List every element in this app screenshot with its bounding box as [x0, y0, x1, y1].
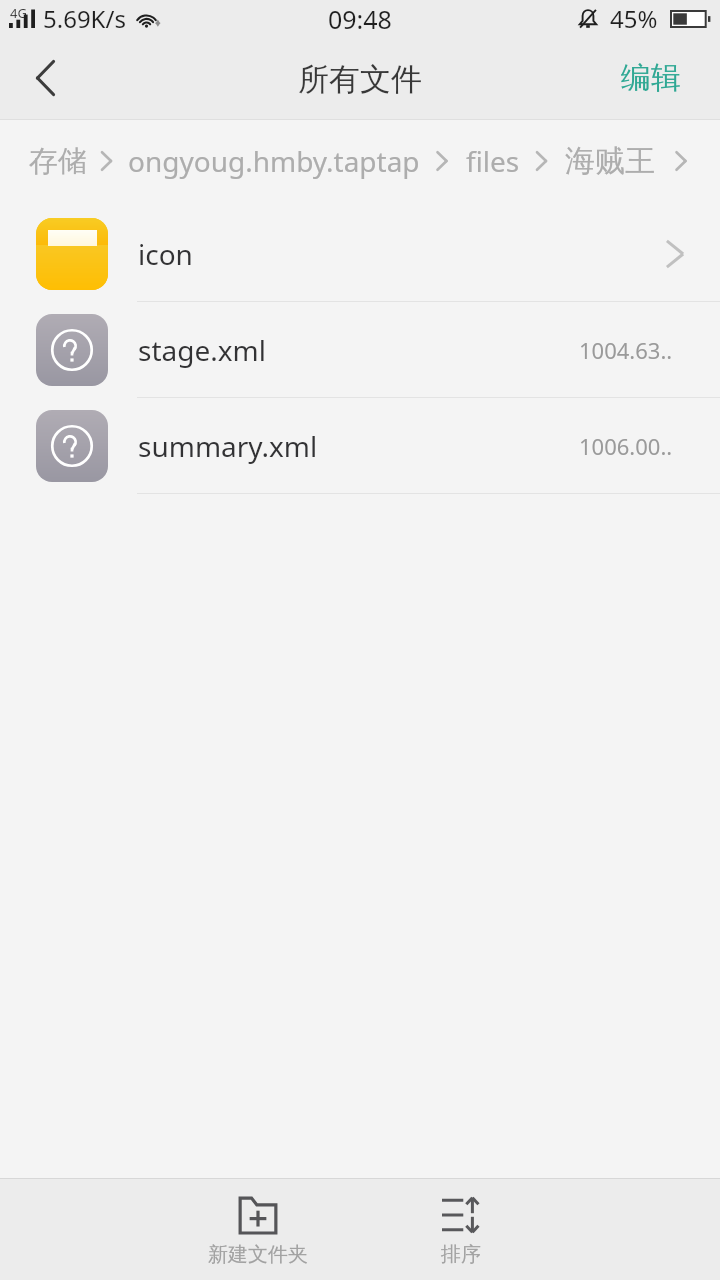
- staticText: 1006.00..: [579, 431, 673, 461]
- staticText: icon: [138, 235, 666, 273]
- button[interactable]: stage.xml: [0, 302, 720, 398]
- staticText: 1004.63..: [579, 335, 673, 365]
- button[interactable]: New folder: [183, 1179, 333, 1280]
- staticText: 5.69K/s: [43, 2, 126, 35]
- button[interactable]: 编辑: [599, 45, 720, 119]
- staticText: 新建文件夹: [208, 1242, 308, 1267]
- staticText: files: [466, 142, 520, 180]
- staticText: 所有文件: [298, 60, 422, 99]
- staticText: 存储: [29, 143, 87, 180]
- button[interactable]: icon: [0, 206, 720, 302]
- button[interactable]: files: [466, 132, 520, 190]
- button[interactable]: Back: [0, 45, 90, 119]
- button[interactable]: summary.xml: [0, 398, 720, 494]
- staticText: 09:48: [328, 2, 392, 36]
- button[interactable]: Sort: [386, 1179, 536, 1280]
- button[interactable]: 海贼王: [565, 132, 655, 190]
- button[interactable]: 存储: [29, 133, 87, 190]
- staticText: 4G: [10, 4, 27, 22]
- staticText: 排序: [441, 1242, 481, 1267]
- other: New folder: [239, 1197, 277, 1233]
- staticText: 海贼王: [565, 142, 655, 180]
- staticText: stage.xml: [138, 331, 579, 369]
- other: Sort: [442, 1197, 480, 1233]
- button[interactable]: ongyoug.hmby.taptap: [128, 132, 420, 190]
- staticText: summary.xml: [138, 427, 579, 465]
- staticText: ongyoug.hmby.taptap: [128, 142, 420, 180]
- staticText: 45%: [610, 2, 658, 35]
- staticText: 编辑: [621, 59, 681, 97]
